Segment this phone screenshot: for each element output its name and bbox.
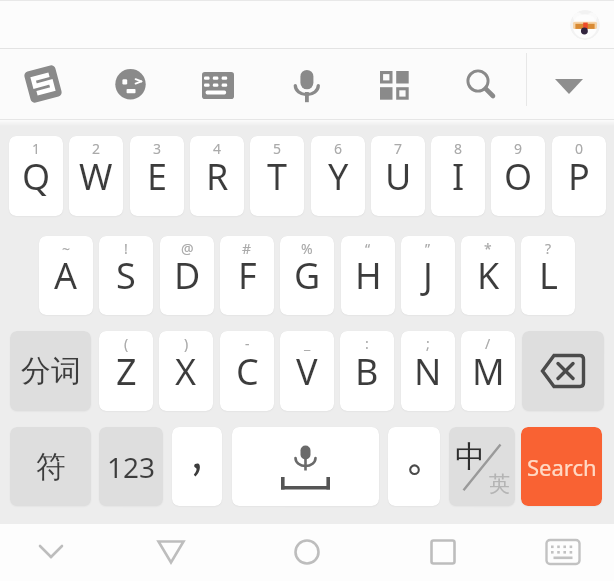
button[interactable]: ) [159,331,213,411]
button[interactable]: Keyboard layouts [190,55,246,111]
button[interactable]: * [461,236,515,315]
button[interactable]: 分词 [10,331,91,411]
button[interactable]: 7 [371,136,425,216]
staticText: W [79,152,113,201]
staticText: 5 [273,139,282,158]
button[interactable]: 4 [190,136,244,216]
button[interactable]: - [220,331,274,411]
button[interactable]: Voice input [278,55,334,111]
button[interactable]: Space [232,427,379,506]
button[interactable]: Collapse keyboard [541,55,597,111]
staticText: 0 [575,139,584,158]
staticText: _ [304,334,311,353]
staticText: S [116,251,136,300]
button[interactable]: 0 [552,136,606,216]
staticText: 英 [489,471,510,497]
button[interactable]: 8 [431,136,485,216]
staticText: B [355,347,379,396]
staticText: 1 [32,139,41,158]
button[interactable]: ~ [39,236,93,315]
staticText: ? [545,239,552,258]
staticText: Y [328,152,349,201]
button[interactable]: # [220,236,274,315]
staticText: 3 [153,139,162,158]
staticText: A [54,251,78,300]
button[interactable]: 符 [10,427,91,506]
staticText: G [294,251,321,300]
button[interactable]: 9 [491,136,545,216]
button[interactable]: Account [570,10,600,40]
staticText: J [423,251,433,300]
button[interactable]: “ [341,236,395,315]
button[interactable]: : [340,331,394,411]
button[interactable]: Chinese English toggle [449,427,515,506]
staticText: ! [124,239,128,258]
staticText: / [485,334,491,353]
button[interactable]: ? [521,236,575,315]
button[interactable]: % [280,236,334,315]
staticText: H [355,251,382,300]
staticText: * [484,239,492,258]
staticText: M [472,347,505,396]
button[interactable]: 3 [130,136,184,216]
staticText: Q [22,152,51,201]
button[interactable]: Search [451,55,507,111]
button[interactable]: ; [401,331,455,411]
staticText: ; [426,334,430,353]
staticText: U [385,152,412,201]
staticText: I [452,152,465,201]
button[interactable]: Recents [416,526,470,578]
button[interactable]: Hide keyboard [24,526,78,578]
button[interactable]: ” [401,236,455,315]
button[interactable]: 6 [311,136,365,216]
staticText: Search [527,452,597,482]
button[interactable]: Comma [172,427,222,506]
staticText: O [504,152,533,201]
staticText: ( [124,334,129,353]
button[interactable]: Sogou [15,55,71,111]
staticText: ” [425,239,431,258]
button[interactable]: Switch keyboard [536,526,590,578]
staticText: 中 [455,438,485,476]
staticText: K [477,251,500,300]
staticText: L [539,251,558,300]
button[interactable]: Emoji [102,55,158,111]
button[interactable]: ! [99,236,153,315]
button[interactable]: / [461,331,515,411]
staticText: # [242,239,252,258]
staticText: 4 [213,139,222,158]
staticText: ) [184,334,189,353]
button[interactable]: _ [280,331,334,411]
button[interactable]: 1 [9,136,63,216]
button[interactable]: Period [388,427,440,506]
button[interactable]: 2 [69,136,123,216]
staticText: 6 [334,139,343,158]
staticText: @ [181,239,194,258]
button[interactable]: Back [144,526,198,578]
staticText: V [296,347,318,396]
staticText: X [175,347,197,396]
button[interactable]: 123 [99,427,163,506]
staticText: D [174,251,201,300]
staticText: Z [116,347,137,396]
staticText: F [238,251,257,300]
button[interactable]: ( [99,331,153,411]
staticText: - [245,334,250,353]
staticText: R [206,152,229,201]
staticText: 8 [454,139,463,158]
button[interactable]: Search [521,427,602,506]
staticText: 分词 [21,352,81,390]
button[interactable]: Home [280,526,334,578]
button[interactable]: More [366,55,422,111]
button[interactable]: 5 [250,136,304,216]
staticText: C [236,347,259,396]
button[interactable]: @ [160,236,214,315]
staticText: % [301,239,313,258]
staticText: N [414,347,442,396]
staticText: 2 [92,139,101,158]
staticText: ~ [62,239,71,258]
staticText: “ [365,239,371,258]
staticText: P [568,152,590,201]
button[interactable]: Backspace [522,331,604,411]
staticText: E [147,152,168,201]
